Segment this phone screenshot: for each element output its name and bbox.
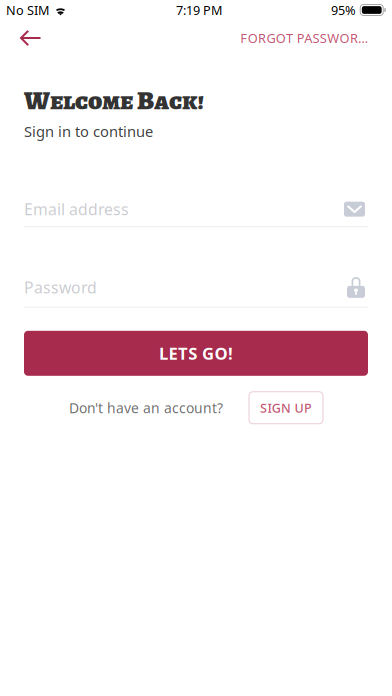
staticText: FORGOT PASSWORD?: [240, 29, 370, 47]
staticText: Welcome Back!: [24, 83, 204, 118]
button[interactable]: Back: [0, 20, 55, 55]
staticText: Don't have an account?: [69, 398, 223, 417]
staticText: Sign in to continue: [24, 121, 153, 141]
staticText: LETS GO!: [159, 342, 233, 365]
button[interactable]: SIGN UP: [249, 392, 323, 424]
button[interactable]: FORGOT PASSWORD?: [230, 18, 392, 58]
button[interactable]: LETS GO!: [24, 331, 368, 376]
staticText: SIGN UP: [260, 399, 312, 416]
staticText: No SIM: [6, 1, 49, 19]
staticText: 95%: [331, 1, 356, 19]
staticText: 7:19 PM: [176, 1, 222, 19]
staticText: Email address: [24, 198, 129, 220]
staticText: Password: [24, 277, 97, 298]
